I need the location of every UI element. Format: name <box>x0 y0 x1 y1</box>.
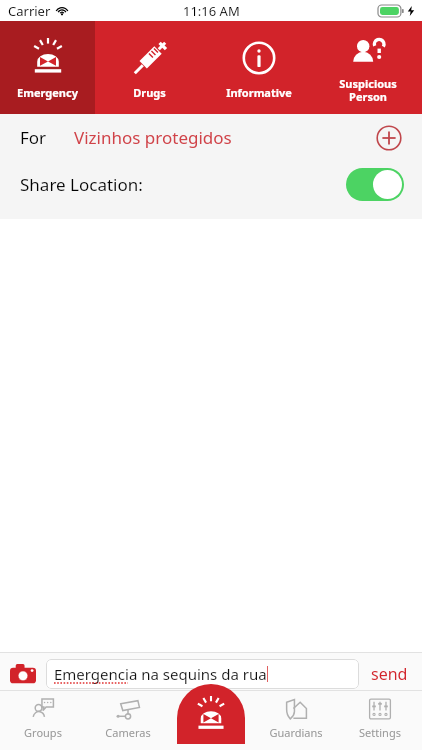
button[interactable]: Camera <box>8 659 38 689</box>
button[interactable]: Suspicious Person <box>313 21 422 114</box>
button[interactable]: send <box>367 657 412 691</box>
staticText: 11:16 AM <box>183 2 240 20</box>
button[interactable]: Groups <box>0 691 85 750</box>
staticText: Suspicious Person <box>339 76 397 104</box>
button[interactable]: Settings <box>338 691 422 750</box>
staticText: Emergencia na sequins da rua <box>54 664 267 684</box>
staticText: Settings <box>359 725 401 740</box>
staticText: Emergency <box>17 85 78 100</box>
button[interactable]: Emergency alert <box>177 684 245 744</box>
button[interactable]: Drugs <box>95 21 204 114</box>
button[interactable]: Emergency <box>0 21 95 114</box>
staticText: Groups <box>24 725 62 740</box>
button[interactable]: Share Location: <box>0 161 422 207</box>
button[interactable]: Guardians <box>254 691 338 750</box>
staticText: Vizinhos protegidos <box>74 126 232 149</box>
staticText: Carrier <box>8 2 51 20</box>
staticText: send <box>371 663 408 685</box>
staticText: Drugs <box>133 85 166 100</box>
button[interactable]: For <box>0 114 422 161</box>
button[interactable]: Add group <box>376 125 402 151</box>
staticText: Informative <box>226 85 292 100</box>
staticText: Cameras <box>105 725 151 740</box>
staticText: Share Location: <box>20 173 143 196</box>
staticText: Guardians <box>269 725 323 740</box>
button[interactable]: Emergencia na sequins da rua <box>46 659 359 689</box>
button[interactable]: Informative <box>204 21 313 114</box>
button[interactable]: Share location toggle, on <box>346 168 404 201</box>
staticText: For <box>20 126 47 149</box>
button[interactable]: Cameras <box>85 691 170 750</box>
